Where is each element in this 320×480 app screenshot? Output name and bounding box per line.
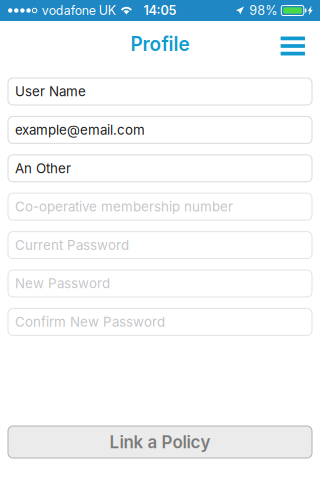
button[interactable]: Current Password [8,232,312,259]
button[interactable]: New Password [8,270,312,297]
button[interactable]: Link a Policy [8,426,312,458]
staticText: Link a Policy [109,432,210,452]
button[interactable]: Co-operative membership number [8,193,312,220]
button[interactable]: User Name [8,78,312,105]
button[interactable]: An Other [8,155,312,182]
staticText: vodafone UK [42,3,116,18]
staticText: Current Password [15,237,129,253]
button[interactable]: Menu [273,24,313,63]
staticText: 98% [249,3,277,18]
button[interactable]: Confirm New Password [8,308,312,335]
staticText: example@email.com [15,122,145,138]
button[interactable]: example@email.com [8,116,312,143]
staticText: User Name [15,83,86,99]
staticText: Co-operative membership number [15,199,233,215]
staticText: An Other [15,160,71,176]
staticText: Confirm New Password [15,314,165,330]
staticText: 14:05 [143,3,176,18]
staticText: Profile [130,32,189,55]
staticText: New Password [15,275,110,291]
